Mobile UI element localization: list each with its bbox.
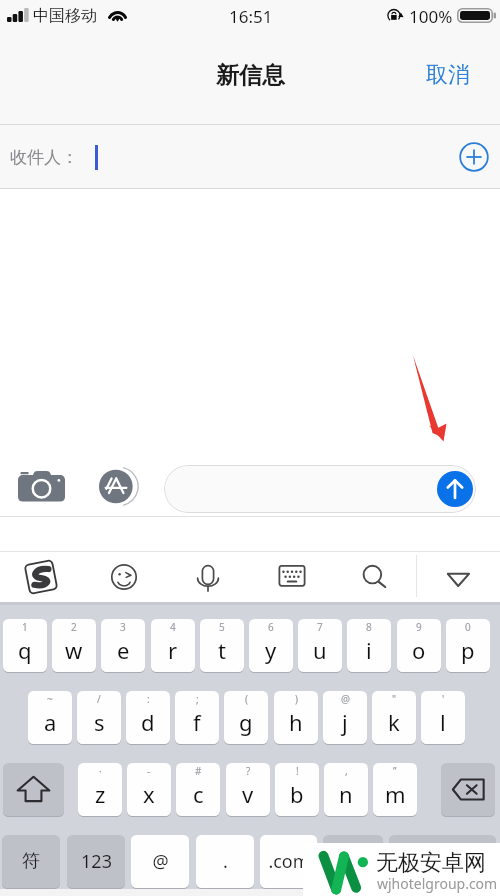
button[interactable]: 符: [2, 835, 60, 888]
staticText: -: [147, 764, 151, 778]
button[interactable]: Sogou input: [21, 557, 61, 597]
button[interactable]: (: [224, 691, 268, 744]
button[interactable]: Search: [354, 557, 394, 597]
staticText: d: [141, 707, 155, 737]
staticText: 中国移动: [33, 6, 97, 26]
button[interactable]: [164, 465, 476, 513]
staticText: 4: [170, 620, 176, 634]
staticText: m: [385, 779, 406, 809]
staticText: 0: [465, 620, 471, 634]
staticText: q: [18, 635, 32, 665]
staticText: w: [65, 635, 83, 665]
staticText: ,: [345, 764, 348, 778]
button[interactable]: :: [126, 691, 170, 744]
button[interactable]: ;: [175, 691, 219, 744]
staticText: 2: [71, 620, 77, 634]
button[interactable]: ): [274, 691, 318, 744]
button[interactable]: @: [131, 835, 189, 888]
staticText: 8: [366, 620, 372, 634]
button[interactable]: Keyboard layout: [271, 557, 311, 597]
staticText: wjhotelgroup.com: [377, 874, 498, 893]
staticText: ': [442, 692, 445, 706]
staticText: ·: [99, 764, 102, 778]
staticText: p: [461, 635, 475, 665]
button[interactable]: 6: [249, 619, 293, 672]
staticText: u: [313, 635, 327, 665]
button[interactable]: 123: [67, 835, 125, 888]
staticText: 符: [22, 850, 40, 873]
button[interactable]: /: [77, 691, 121, 744]
staticText: @: [152, 849, 169, 874]
button[interactable]: 3: [101, 619, 145, 672]
staticText: a: [44, 707, 57, 737]
staticText: 16:51: [229, 5, 273, 28]
staticText: z: [95, 779, 106, 809]
staticText: ;: [196, 692, 199, 706]
staticText: r: [168, 635, 178, 665]
button[interactable]: Backspace: [441, 763, 495, 816]
button[interactable]: .: [196, 835, 254, 888]
button[interactable]: Return: [389, 835, 496, 888]
button[interactable]: App Store: [99, 468, 136, 505]
button[interactable]: .com: [260, 835, 317, 888]
staticText: /: [97, 692, 101, 706]
staticText: ”: [393, 764, 397, 778]
staticText: o: [412, 635, 426, 665]
button[interactable]: 1: [3, 619, 47, 672]
staticText: #: [195, 764, 202, 778]
staticText: 6: [268, 620, 274, 634]
staticText: n: [339, 779, 353, 809]
button[interactable]: @: [323, 691, 367, 744]
button[interactable]: Emoji: [104, 557, 144, 597]
button[interactable]: 4: [151, 619, 195, 672]
staticText: l: [440, 707, 446, 737]
staticText: y: [265, 635, 277, 665]
staticText: h: [289, 707, 303, 737]
button[interactable]: 5: [200, 619, 244, 672]
button[interactable]: 0: [446, 619, 490, 672]
staticText: 3: [120, 620, 126, 634]
staticText: 1: [22, 620, 28, 634]
staticText: b: [290, 779, 304, 809]
button[interactable]: Voice input: [188, 557, 228, 597]
button[interactable]: -: [127, 763, 171, 816]
staticText: c: [193, 779, 204, 809]
button[interactable]: #: [176, 763, 220, 816]
staticText: 123: [81, 849, 112, 874]
staticText: 无极安卓网: [376, 849, 486, 877]
button[interactable]: Hide keyboard: [438, 557, 478, 597]
button[interactable]: ·: [78, 763, 122, 816]
button[interactable]: Send: [437, 471, 473, 507]
button[interactable]: 取消: [404, 51, 500, 99]
button[interactable]: Add contact: [459, 142, 489, 172]
button[interactable]: Shift: [3, 763, 64, 816]
staticText: :: [147, 692, 150, 706]
button[interactable]: 7: [298, 619, 342, 672]
button[interactable]: ": [372, 691, 416, 744]
button[interactable]: ”: [373, 763, 417, 816]
staticText: v: [242, 779, 254, 809]
staticText: 取消: [426, 61, 470, 89]
button[interactable]: Camera: [17, 470, 66, 503]
button[interactable]: 9: [397, 619, 441, 672]
staticText: (: [245, 692, 248, 706]
button[interactable]: 2: [52, 619, 96, 672]
button[interactable]: Space: [323, 835, 383, 888]
button[interactable]: !: [275, 763, 319, 816]
button[interactable]: 8: [347, 619, 391, 672]
staticText: ): [295, 692, 298, 706]
staticText: .: [223, 849, 228, 874]
staticText: f: [193, 707, 201, 737]
staticText: 100%: [409, 5, 453, 28]
button[interactable]: ,: [324, 763, 368, 816]
staticText: !: [296, 764, 299, 778]
button[interactable]: ~: [28, 691, 72, 744]
staticText: i: [366, 635, 372, 665]
button[interactable]: ': [421, 691, 465, 744]
staticText: 9: [416, 620, 422, 634]
button[interactable]: ?: [226, 763, 270, 816]
staticText: 7: [317, 620, 323, 634]
staticText: j: [342, 707, 348, 737]
staticText: s: [94, 707, 105, 737]
staticText: x: [143, 779, 155, 809]
